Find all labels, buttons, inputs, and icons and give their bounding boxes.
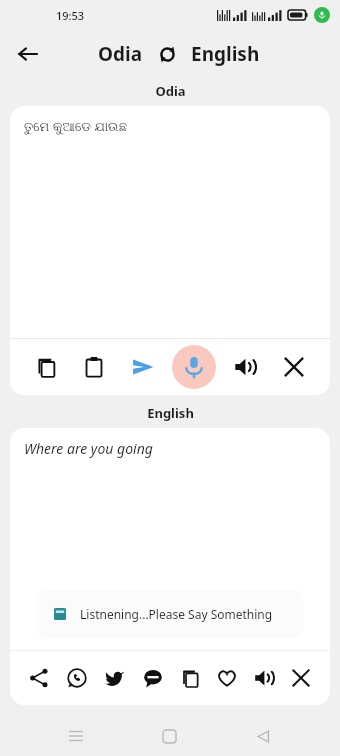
button[interactable]: English <box>191 41 260 67</box>
staticText: Odia <box>98 41 143 67</box>
button[interactable]: Back <box>246 719 280 753</box>
button[interactable]: Translate <box>123 347 163 387</box>
button[interactable]: ତୁମେ କୁଆଡେ ଯାଉଛ <box>10 106 330 338</box>
staticText: Listnening...Please Say Something <box>80 606 273 622</box>
staticText: English <box>147 404 194 422</box>
button[interactable]: Where are you going <box>24 439 153 458</box>
button[interactable]: Swap languages <box>154 41 180 67</box>
button[interactable]: Twitter <box>97 660 133 696</box>
button[interactable]: Back <box>8 34 48 74</box>
button[interactable]: Share <box>21 660 57 696</box>
button[interactable]: Odia <box>98 41 143 67</box>
button[interactable]: Speak <box>172 345 216 389</box>
staticText: Odia <box>155 82 186 100</box>
button[interactable]: WhatsApp <box>59 660 95 696</box>
button[interactable]: Speak aloud <box>246 660 282 696</box>
button[interactable]: Favourite <box>209 660 245 696</box>
staticText: English <box>191 41 260 67</box>
button[interactable]: Recents <box>59 719 93 753</box>
button[interactable]: Close <box>283 660 319 696</box>
button[interactable]: Paste <box>74 347 114 387</box>
staticText: 19:53 <box>56 8 85 23</box>
button[interactable]: Speak aloud <box>225 347 265 387</box>
button[interactable]: Copy <box>26 347 66 387</box>
button[interactable]: Home <box>152 719 186 753</box>
button[interactable]: Copy <box>172 660 208 696</box>
staticText: ତୁମେ କୁଆଡେ ଯାଉଛ <box>24 117 128 135</box>
button[interactable]: Clear <box>274 347 314 387</box>
button[interactable]: SMS <box>135 660 171 696</box>
